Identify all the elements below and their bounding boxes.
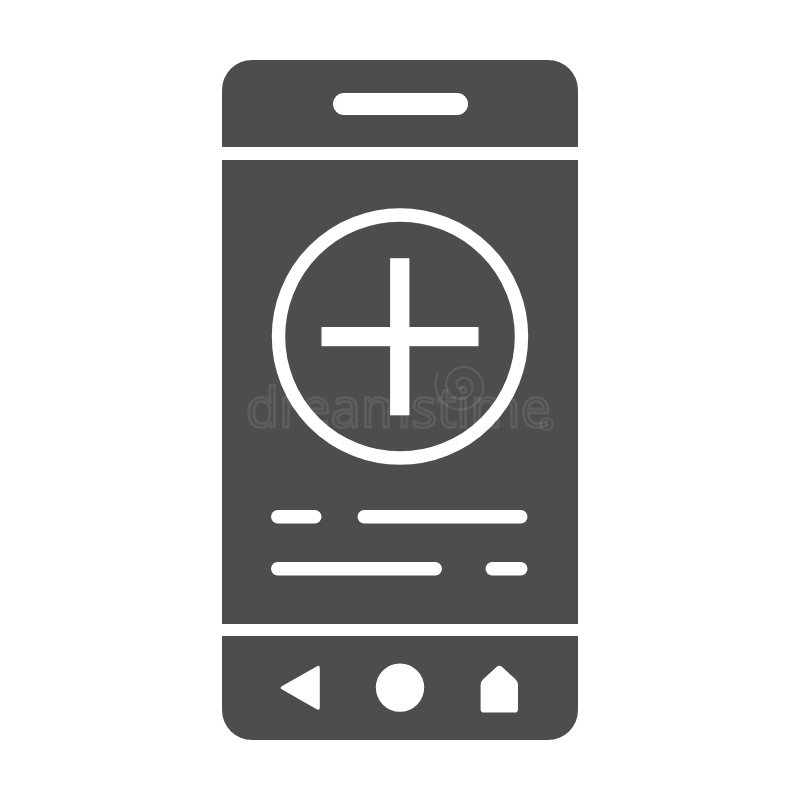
button[interactable]: Add new item on mobile phone (0, 0, 800, 800)
